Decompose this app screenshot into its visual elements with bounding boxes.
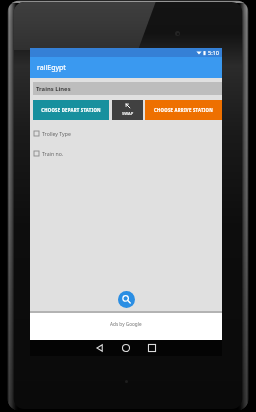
staticText: Train no. xyxy=(42,150,64,157)
button[interactable]: Trolley Type xyxy=(34,128,134,138)
button[interactable]: Recent apps xyxy=(139,340,165,356)
staticText: Ads by Google xyxy=(110,321,142,327)
staticText: CHOOSE ARRIVE STATION xyxy=(154,107,213,113)
button[interactable]: Trains Lines xyxy=(33,82,222,95)
button[interactable]: Train no. xyxy=(34,148,134,158)
staticText: SWAP xyxy=(122,111,134,117)
button[interactable]: Swap stations xyxy=(112,100,143,120)
staticText: CHOOSE DEPART STATION xyxy=(41,107,101,113)
staticText: 5:10 xyxy=(208,49,219,56)
staticText: Trolley Type xyxy=(42,130,71,137)
button[interactable]: Search xyxy=(118,291,135,308)
staticText: railEgypt xyxy=(37,63,66,73)
button[interactable]: Back xyxy=(87,340,113,356)
button[interactable]: CHOOSE ARRIVE STATION xyxy=(145,100,222,120)
button[interactable]: CHOOSE DEPART STATION xyxy=(33,100,109,120)
button[interactable]: Home xyxy=(113,340,139,356)
staticText: Trains Lines xyxy=(36,85,71,93)
